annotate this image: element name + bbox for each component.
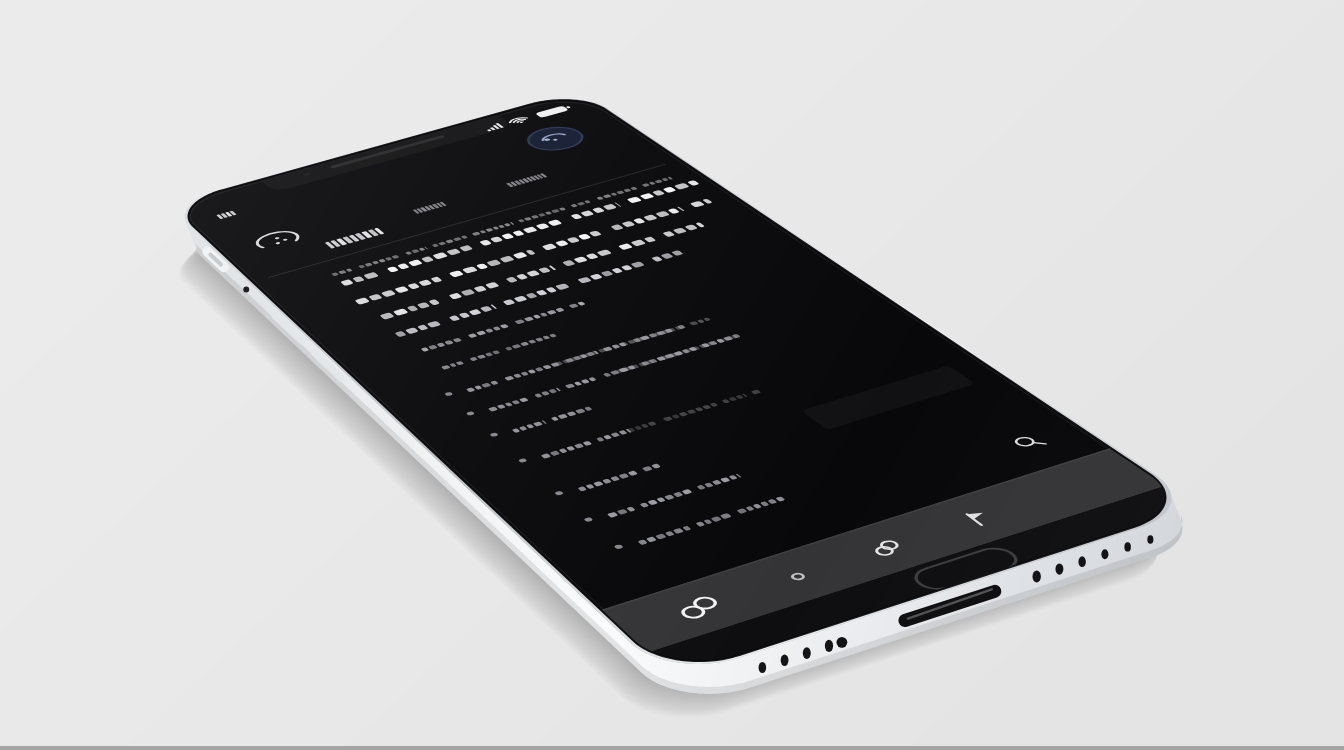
button[interactable]: Home bbox=[650, 565, 780, 645]
button[interactable]: Wallet bbox=[830, 500, 950, 572]
button[interactable]: Activity bbox=[740, 530, 860, 606]
button[interactable]: Overview tab bbox=[400, 205, 550, 261]
button[interactable]: Alerts bbox=[915, 470, 1035, 540]
button[interactable]: Profile bbox=[520, 105, 596, 179]
button[interactable]: Transactions tab bbox=[520, 170, 700, 230]
button[interactable]: Back bbox=[245, 205, 315, 253]
button[interactable]: Home button bbox=[880, 540, 1010, 602]
button[interactable]: Search bbox=[1000, 420, 1080, 490]
